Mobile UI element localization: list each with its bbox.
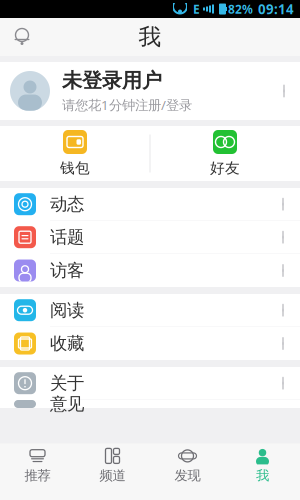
button[interactable]: 钱包 (0, 126, 150, 181)
button[interactable]: 未登录用户 (0, 62, 300, 120)
staticText: 动态 (50, 194, 84, 215)
staticText: E (193, 1, 200, 17)
staticText: 阅读 (50, 300, 84, 321)
staticText: 话题 (50, 227, 84, 248)
staticText: 我 (138, 23, 161, 51)
button[interactable]: 访客 (0, 254, 300, 287)
staticText: 访客 (50, 260, 84, 281)
button[interactable]: 关于 (0, 367, 300, 400)
staticText: 频道 (99, 467, 125, 484)
staticText: 82% (228, 1, 253, 17)
button[interactable]: 阅读 (0, 294, 300, 327)
staticText: 请您花1分钟注册/登录 (62, 96, 192, 114)
staticText: 意见 (50, 393, 84, 415)
button[interactable]: 话题 (0, 221, 300, 254)
staticText: 钱包 (60, 159, 90, 177)
staticText: 未登录用户 (62, 68, 162, 93)
button[interactable]: 收藏 (0, 327, 300, 360)
button[interactable]: 发现 (150, 444, 225, 488)
staticText: 推荐 (24, 467, 50, 484)
staticText: 收藏 (50, 333, 84, 354)
staticText: 发现 (174, 467, 200, 484)
button[interactable]: 动态 (0, 188, 300, 221)
button[interactable]: 我 (225, 444, 300, 488)
button[interactable]: Notifications (0, 18, 44, 56)
staticText: 好友 (210, 159, 240, 177)
staticText: 我 (256, 467, 269, 484)
button[interactable]: 推荐 (0, 444, 75, 488)
staticText: 关于 (50, 373, 84, 394)
button[interactable]: 好友 (150, 126, 300, 181)
staticText: 09:14 (258, 0, 294, 18)
button[interactable]: 频道 (75, 444, 150, 488)
